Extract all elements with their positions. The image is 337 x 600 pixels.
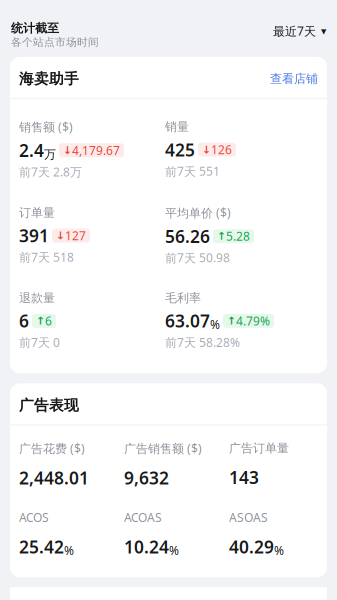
- staticText: 4,179.67: [72, 142, 120, 158]
- staticText: 143: [229, 466, 259, 489]
- staticText: 前7天 551: [165, 163, 220, 179]
- staticText: ↓: [63, 144, 72, 156]
- staticText: 6: [45, 313, 52, 329]
- staticText: 最近7天: [273, 23, 316, 39]
- staticText: ↑: [217, 230, 226, 242]
- staticText: 销售额 ($): [19, 119, 73, 135]
- staticText: 2,448.01: [19, 466, 89, 489]
- staticText: 425: [165, 138, 195, 161]
- staticText: 万: [44, 147, 56, 162]
- staticText: ACOAS: [124, 509, 162, 525]
- staticText: 25.42: [19, 535, 64, 558]
- staticText: 各个站点市场时间: [11, 36, 99, 49]
- staticText: 56.26: [165, 225, 210, 248]
- staticText: 查看店铺: [270, 71, 318, 86]
- staticText: 订单量: [19, 205, 55, 220]
- staticText: 2.4: [19, 139, 44, 162]
- staticText: 广告销售额 ($): [124, 440, 202, 456]
- staticText: 前7天 50.98: [165, 250, 230, 266]
- staticText: 毛利率: [165, 291, 201, 305]
- staticText: ↑: [36, 315, 45, 327]
- staticText: 销量: [165, 119, 189, 134]
- staticText: 4.79%: [236, 313, 270, 329]
- staticText: 前7天 518: [19, 249, 74, 265]
- staticText: 前7天 2.8万: [19, 164, 82, 180]
- staticText: ↓: [56, 229, 65, 242]
- staticText: 63.07: [165, 309, 210, 332]
- staticText: 5.28: [226, 228, 250, 244]
- staticText: 平均单价 ($): [165, 205, 231, 221]
- staticText: 391: [19, 224, 49, 247]
- staticText: 广告表现: [19, 396, 79, 414]
- staticText: 统计截至: [11, 21, 59, 36]
- staticText: ↓: [202, 144, 211, 156]
- staticText: 退款量: [19, 291, 55, 305]
- staticText: 广告订单量: [229, 441, 289, 456]
- staticText: 海卖助手: [19, 70, 79, 88]
- staticText: ▾: [321, 25, 326, 37]
- staticText: %: [169, 542, 179, 558]
- staticText: %: [210, 316, 220, 332]
- staticText: 127: [65, 228, 86, 243]
- button[interactable]: 最近7天: [273, 21, 326, 39]
- staticText: 40.29: [229, 535, 274, 558]
- button[interactable]: 查看店铺: [270, 71, 318, 86]
- staticText: 10.24: [124, 535, 169, 558]
- staticText: %: [64, 542, 74, 558]
- staticText: %: [274, 542, 284, 558]
- staticText: 前7天 58.28%: [165, 334, 240, 350]
- staticText: 前7天 0: [19, 334, 60, 350]
- staticText: 126: [211, 142, 232, 158]
- staticText: ACOS: [19, 509, 49, 525]
- staticText: 6: [19, 309, 29, 332]
- staticText: ASOAS: [229, 509, 268, 525]
- staticText: 9,632: [124, 466, 169, 489]
- staticText: 广告花费 ($): [19, 440, 85, 456]
- staticText: ↑: [227, 315, 236, 327]
